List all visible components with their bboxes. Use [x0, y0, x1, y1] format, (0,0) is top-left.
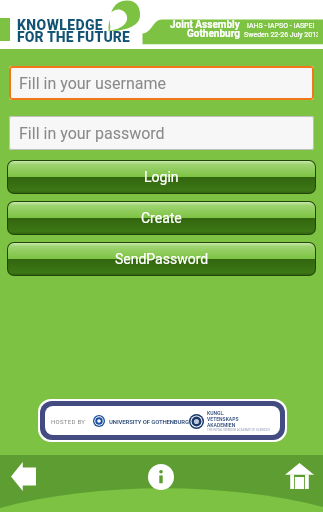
staticText: UNIVERSITY OF GOTHENBURG [109, 418, 189, 425]
staticText: Create [141, 210, 182, 226]
button[interactable]: Home [259, 455, 323, 512]
button[interactable]: Fill in your password [9, 116, 314, 150]
staticText: Fill in your username [19, 74, 167, 93]
staticText: SendPassword [115, 251, 209, 267]
button[interactable]: Create [8, 202, 315, 234]
staticText: Gothenburg [187, 28, 240, 40]
staticText: Sweden 22-26 July 2013 [244, 31, 318, 39]
staticText: THE ROYAL SWEDISH ACADEMY OF SCIENCES [207, 428, 270, 432]
staticText: AKADEMIEN [207, 422, 236, 428]
staticText: Fill in your password [19, 124, 165, 143]
button[interactable]: Back [0, 455, 64, 512]
staticText: FOR THE FUTURE [17, 29, 130, 45]
staticText: KNOWLEDGE [17, 17, 104, 33]
staticText: Joint Assembly [170, 19, 240, 31]
button[interactable]: Info [64, 455, 259, 512]
button[interactable]: Fill in your username [9, 66, 314, 100]
staticText: KUNGL. [207, 410, 225, 416]
button[interactable]: SendPassword [8, 243, 315, 275]
staticText: VETENSKAPS [207, 416, 239, 422]
button[interactable]: Login [8, 161, 315, 193]
staticText: HOSTED BY [51, 418, 86, 425]
staticText: Login [144, 169, 179, 185]
staticText: IAHS - IAPSO - IASPEI [247, 22, 315, 30]
